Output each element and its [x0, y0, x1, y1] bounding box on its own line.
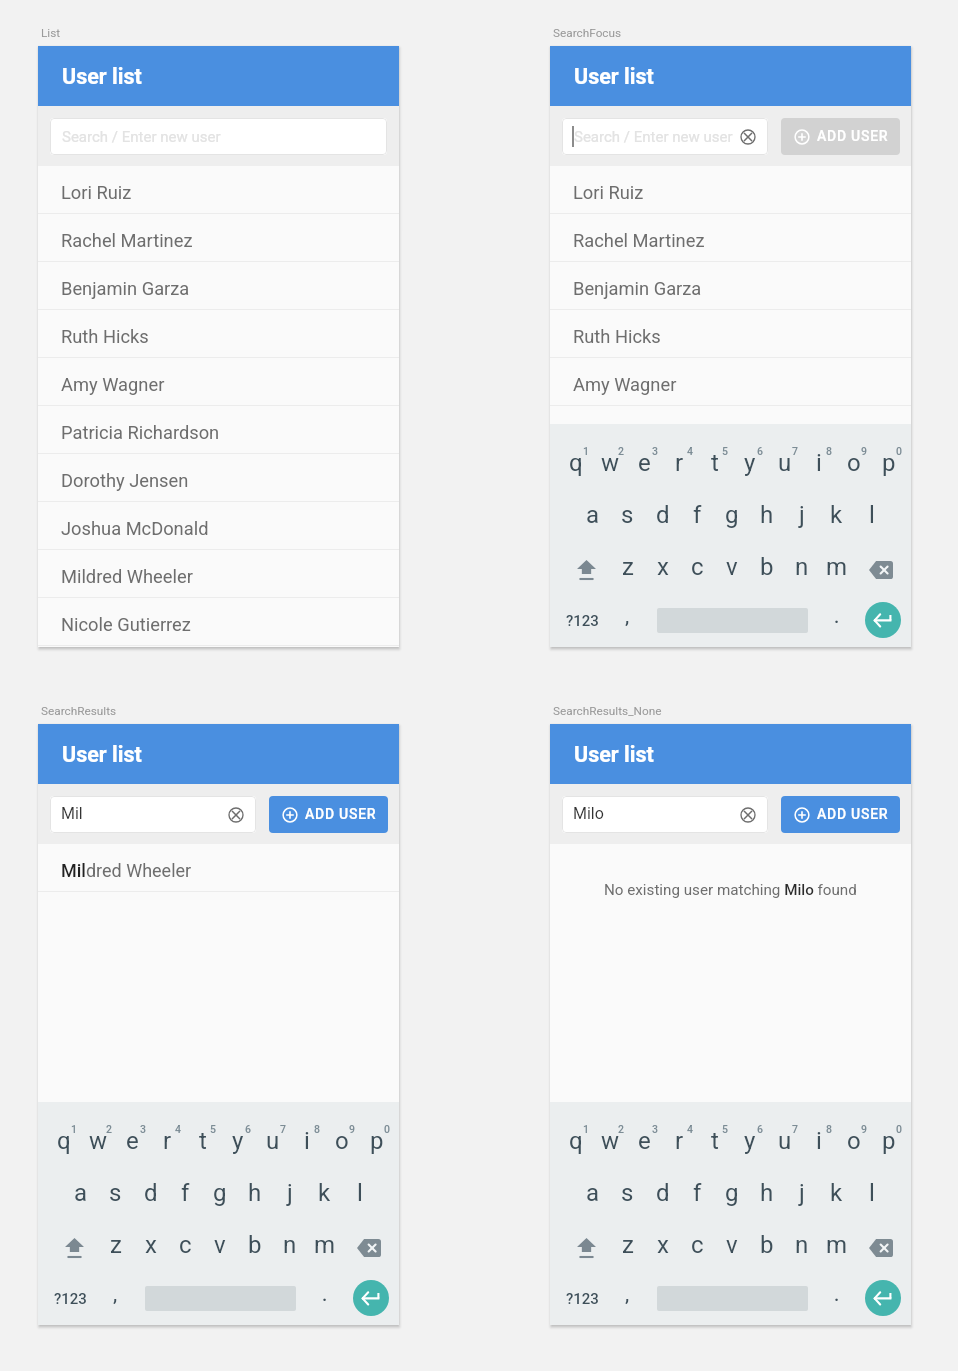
- button[interactable]: Shift: [558, 541, 610, 593]
- button[interactable]: Milo: [562, 796, 768, 833]
- button[interactable]: j: [272, 1167, 307, 1219]
- button[interactable]: s: [610, 489, 645, 541]
- button[interactable]: Rachel Martinez: [550, 214, 911, 262]
- button[interactable]: y: [732, 437, 767, 489]
- button[interactable]: Period: [819, 1274, 854, 1324]
- button[interactable]: l: [342, 1167, 377, 1219]
- button[interactable]: o: [836, 1115, 871, 1167]
- button[interactable]: ADD USER: [269, 796, 388, 833]
- button[interactable]: q: [558, 437, 593, 489]
- button[interactable]: m: [819, 541, 854, 593]
- button[interactable]: i: [801, 437, 836, 489]
- button[interactable]: f: [680, 489, 715, 541]
- button[interactable]: Amy Wagner: [550, 358, 911, 406]
- button[interactable]: i: [289, 1115, 324, 1167]
- button[interactable]: Shift: [46, 1219, 98, 1271]
- button[interactable]: v: [714, 1219, 749, 1271]
- button[interactable]: l: [854, 1167, 889, 1219]
- button[interactable]: Space: [133, 1274, 307, 1324]
- button[interactable]: Comma: [610, 596, 645, 646]
- button[interactable]: w: [593, 437, 628, 489]
- button[interactable]: c: [680, 541, 715, 593]
- button[interactable]: Enter: [854, 596, 906, 646]
- button[interactable]: Period: [307, 1274, 342, 1324]
- button[interactable]: ADD USER: [781, 118, 900, 155]
- button[interactable]: e: [115, 1115, 150, 1167]
- button[interactable]: n: [784, 541, 819, 593]
- button[interactable]: d: [133, 1167, 168, 1219]
- button[interactable]: c: [168, 1219, 203, 1271]
- button[interactable]: j: [784, 1167, 819, 1219]
- button[interactable]: Lori Ruiz: [550, 166, 911, 214]
- button[interactable]: e: [627, 437, 662, 489]
- button[interactable]: u: [767, 1115, 802, 1167]
- button[interactable]: ADD USER: [781, 796, 900, 833]
- button[interactable]: e: [627, 1115, 662, 1167]
- button[interactable]: t: [185, 1115, 220, 1167]
- button[interactable]: Benjamin Garza: [550, 262, 911, 310]
- button[interactable]: Rachel Martinez: [38, 214, 399, 262]
- button[interactable]: g: [202, 1167, 237, 1219]
- button[interactable]: a: [575, 1167, 610, 1219]
- button[interactable]: u: [255, 1115, 290, 1167]
- button[interactable]: Backspace: [342, 1219, 394, 1271]
- button[interactable]: k: [307, 1167, 342, 1219]
- button[interactable]: o: [836, 437, 871, 489]
- button[interactable]: g: [714, 1167, 749, 1219]
- button[interactable]: v: [202, 1219, 237, 1271]
- button[interactable]: f: [168, 1167, 203, 1219]
- button[interactable]: p: [871, 1115, 906, 1167]
- button[interactable]: n: [272, 1219, 307, 1271]
- button[interactable]: h: [749, 489, 784, 541]
- button[interactable]: t: [697, 437, 732, 489]
- button[interactable]: Space: [645, 596, 819, 646]
- button[interactable]: Joshua McDonald: [38, 502, 399, 550]
- button[interactable]: Comma: [610, 1274, 645, 1324]
- button[interactable]: Comma: [98, 1274, 133, 1324]
- button[interactable]: Period: [819, 596, 854, 646]
- button[interactable]: m: [819, 1219, 854, 1271]
- button[interactable]: Mildred Wheeler: [38, 550, 399, 598]
- button[interactable]: k: [819, 489, 854, 541]
- button[interactable]: q: [46, 1115, 81, 1167]
- button[interactable]: o: [324, 1115, 359, 1167]
- button[interactable]: v: [714, 541, 749, 593]
- button[interactable]: z: [610, 541, 645, 593]
- button[interactable]: Patricia Richardson: [38, 406, 399, 454]
- button[interactable]: Clear text: [224, 803, 248, 827]
- button[interactable]: y: [220, 1115, 255, 1167]
- button[interactable]: n: [784, 1219, 819, 1271]
- button[interactable]: s: [98, 1167, 133, 1219]
- button[interactable]: Symbols: [556, 1274, 608, 1324]
- button[interactable]: Enter: [854, 1274, 906, 1324]
- button[interactable]: Ruth Hicks: [550, 310, 911, 358]
- button[interactable]: Ruth Hicks: [38, 310, 399, 358]
- button[interactable]: Backspace: [854, 1219, 906, 1271]
- button[interactable]: Symbols: [44, 1274, 96, 1324]
- button[interactable]: r: [662, 1115, 697, 1167]
- button[interactable]: h: [237, 1167, 272, 1219]
- button[interactable]: f: [680, 1167, 715, 1219]
- button[interactable]: y: [732, 1115, 767, 1167]
- button[interactable]: p: [359, 1115, 394, 1167]
- button[interactable]: Search / Enter new user: [50, 118, 387, 155]
- button[interactable]: Space: [645, 1274, 819, 1324]
- button[interactable]: i: [801, 1115, 836, 1167]
- button[interactable]: Symbols: [556, 596, 608, 646]
- button[interactable]: p: [871, 437, 906, 489]
- button[interactable]: k: [819, 1167, 854, 1219]
- button[interactable]: Clear text: [736, 125, 760, 149]
- button[interactable]: Benjamin Garza: [38, 262, 399, 310]
- button[interactable]: j: [784, 489, 819, 541]
- button[interactable]: Mil: [50, 796, 256, 833]
- button[interactable]: d: [645, 1167, 680, 1219]
- button[interactable]: m: [307, 1219, 342, 1271]
- button[interactable]: Enter: [342, 1274, 394, 1324]
- button[interactable]: r: [662, 437, 697, 489]
- button[interactable]: r: [150, 1115, 185, 1167]
- button[interactable]: z: [610, 1219, 645, 1271]
- button[interactable]: a: [63, 1167, 98, 1219]
- button[interactable]: b: [749, 541, 784, 593]
- button[interactable]: Lori Ruiz: [38, 166, 399, 214]
- button[interactable]: b: [749, 1219, 784, 1271]
